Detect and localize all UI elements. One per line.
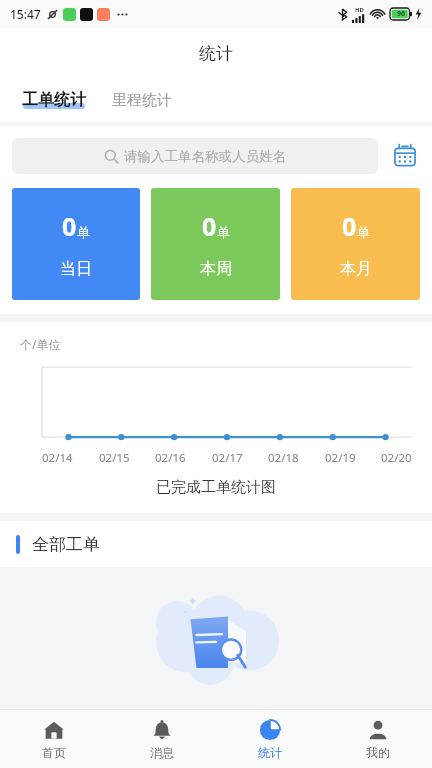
staticText: 我的	[366, 745, 390, 760]
staticText: 02/18	[268, 450, 299, 466]
button[interactable]: 全部工单	[0, 521, 432, 567]
staticText: HD	[355, 6, 364, 14]
staticText: 0	[202, 209, 217, 243]
staticText: 全部工单	[32, 534, 100, 555]
staticText: 统计	[258, 745, 282, 760]
staticText: 0	[342, 209, 357, 243]
staticText: 单	[77, 224, 90, 240]
staticText: 请输入工单名称或人员姓名	[124, 148, 286, 165]
button[interactable]: 我的	[324, 710, 432, 768]
staticText: 工单统计	[22, 90, 86, 110]
button[interactable]: 选择日期	[390, 141, 420, 171]
staticText: 02/20	[381, 450, 412, 466]
staticText: 单	[357, 224, 370, 240]
button[interactable]: 0	[151, 188, 280, 300]
staticText: 02/14	[42, 450, 73, 466]
staticText: 02/16	[155, 450, 186, 466]
staticText: 首页	[42, 745, 66, 760]
staticText: 统计	[199, 43, 233, 64]
button[interactable]: 工单统计	[20, 86, 88, 114]
staticText: 15:47	[10, 6, 41, 22]
staticText: 本周	[200, 259, 232, 279]
button[interactable]: 里程统计	[110, 87, 174, 114]
staticText: 单	[217, 224, 230, 240]
staticText: 已完成工单统计图	[156, 478, 276, 497]
staticText: 02/17	[212, 450, 243, 466]
staticText: 02/19	[325, 450, 356, 466]
button[interactable]: 统计	[216, 710, 324, 768]
button[interactable]: 首页	[0, 710, 108, 768]
staticText: 0	[62, 209, 77, 243]
staticText: 96	[397, 9, 406, 19]
button[interactable]: 0	[12, 188, 140, 300]
staticText: 02/15	[99, 450, 130, 466]
staticText: 里程统计	[112, 91, 172, 110]
staticText: 个/单位	[20, 336, 61, 352]
button[interactable]: 0	[291, 188, 420, 300]
staticText: 本月	[340, 259, 372, 279]
button[interactable]: 请输入工单名称或人员姓名	[12, 138, 378, 174]
staticText: 消息	[150, 745, 174, 760]
button[interactable]: 消息	[108, 710, 216, 768]
staticText: 当日	[60, 259, 92, 279]
